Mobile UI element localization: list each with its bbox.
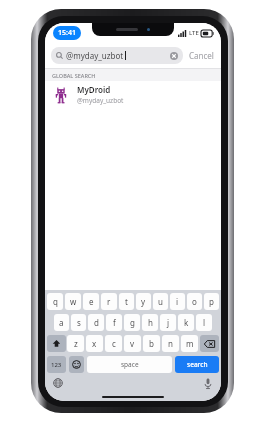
staticText: j [167,317,170,328]
staticText: a [59,317,64,328]
button[interactable]: Keyboard key [47,335,66,352]
staticText: m [186,338,194,349]
button[interactable]: Change keyboard language [52,377,64,389]
button[interactable]: w [65,293,81,310]
button[interactable]: p [204,293,219,310]
staticText: p [209,296,214,307]
staticText: @myday_uzbot [66,50,124,61]
button[interactable]: @myday_uzbot [51,47,183,64]
staticText: u [158,296,163,307]
button[interactable]: c [105,335,122,352]
staticText: h [148,317,153,328]
staticText: MyDroid [77,84,111,95]
button[interactable]: j [160,314,176,331]
button[interactable]: q [47,293,63,310]
button[interactable]: g [124,314,140,331]
button[interactable]: 123 [47,356,66,373]
button[interactable]: m [181,335,198,352]
staticText: i [176,296,179,307]
button[interactable]: v [124,335,141,352]
button[interactable]: y [136,293,151,310]
button[interactable]: i [170,293,185,310]
button[interactable]: Clear text [170,52,178,60]
button[interactable]: u [153,293,168,310]
staticText: o [192,296,197,307]
staticText: l [203,317,206,328]
button[interactable]: search [175,356,219,373]
staticText: k [184,317,189,328]
staticText: Cancel [189,50,214,61]
staticText: f [113,317,116,328]
staticText: s [77,317,81,328]
staticText: q [53,296,58,307]
button[interactable]: a [54,314,69,331]
staticText: y [141,296,146,307]
staticText: r [107,296,111,307]
button[interactable]: l [196,314,212,331]
staticText: t [125,296,128,307]
button[interactable]: n [162,335,179,352]
staticText: g [130,317,135,328]
button[interactable]: e [83,293,99,310]
button[interactable]: Cancel [188,50,215,61]
staticText: search [187,360,208,369]
button[interactable]: t [119,293,134,310]
button[interactable]: Emoji [69,356,84,373]
staticText: c [112,338,116,349]
staticText: 15:41 [58,28,76,38]
staticText: e [89,296,94,307]
button[interactable]: space [87,356,172,373]
button[interactable]: d [88,314,104,331]
staticText: b [149,338,154,349]
staticText: 123 [51,361,62,369]
button[interactable]: x [86,335,103,352]
staticText: GLOBAL SEARCH [52,72,96,79]
staticText: n [168,338,173,349]
staticText: x [92,338,97,349]
staticText: @myday_uzbot [77,96,124,105]
button[interactable]: h [142,314,158,331]
button[interactable]: b [143,335,160,352]
button[interactable]: k [178,314,194,331]
button[interactable]: Keyboard key [200,335,219,352]
button[interactable]: Dictate [202,377,214,389]
staticText: space [121,360,139,369]
staticText: d [94,317,99,328]
staticText: w [70,296,77,307]
staticText: z [74,338,78,349]
button[interactable]: MyDroid [45,81,221,108]
button[interactable]: r [101,293,117,310]
button[interactable]: z [67,335,84,352]
button[interactable]: o [187,293,202,310]
staticText: v [130,338,135,349]
button[interactable]: s [71,314,86,331]
staticText: LTE [189,29,199,37]
button[interactable]: f [106,314,122,331]
